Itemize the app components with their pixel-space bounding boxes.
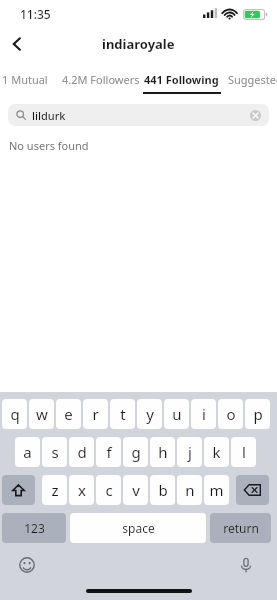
button[interactable]: u (164, 399, 189, 429)
staticText: m (209, 480, 224, 500)
button[interactable]: 4.2M Followers (62, 64, 140, 94)
button[interactable]: h (150, 437, 175, 467)
staticText: lildurk (32, 108, 66, 123)
button[interactable]: s (42, 437, 67, 467)
staticText: d (77, 442, 87, 462)
button[interactable]: k (204, 437, 229, 467)
staticText: n (185, 480, 195, 500)
button[interactable]: a (15, 437, 40, 467)
button[interactable]: g (123, 437, 148, 467)
button[interactable]: z (42, 475, 67, 505)
staticText: u (172, 404, 182, 424)
button[interactable]: 441 Following (140, 64, 222, 94)
button[interactable]: Dictation (233, 552, 259, 578)
staticText: l (242, 442, 246, 462)
staticText: space (122, 520, 155, 536)
button[interactable]: Clear search (246, 106, 264, 124)
staticText: v (132, 480, 140, 500)
staticText: 11:35 (20, 6, 51, 22)
staticText: Suggested (228, 72, 277, 87)
staticText: w (36, 404, 48, 424)
staticText: z (51, 480, 59, 500)
staticText: a (23, 442, 32, 462)
staticText: i (202, 404, 206, 424)
button[interactable]: Suggested (222, 64, 277, 94)
button[interactable]: space (70, 513, 206, 543)
staticText: t (120, 404, 126, 424)
button[interactable]: o (218, 399, 243, 429)
button[interactable]: p (245, 399, 270, 429)
button[interactable]: 123 (2, 513, 66, 543)
staticText: f (106, 442, 112, 462)
button[interactable]: l (231, 437, 256, 467)
button[interactable]: return (210, 513, 271, 543)
button[interactable]: e (56, 399, 81, 429)
button[interactable]: i (191, 399, 216, 429)
button[interactable]: d (69, 437, 94, 467)
staticText: return (223, 520, 259, 536)
button[interactable]: m (204, 475, 229, 505)
staticText: 1 Mutual (2, 72, 48, 87)
button[interactable]: v (123, 475, 148, 505)
button[interactable]: n (177, 475, 202, 505)
staticText: c (105, 480, 113, 500)
button[interactable]: f (96, 437, 121, 467)
staticText: s (51, 442, 59, 462)
staticText: p (253, 404, 263, 424)
button[interactable]: j (177, 437, 202, 467)
button[interactable]: c (96, 475, 121, 505)
staticText: q (10, 404, 20, 424)
button[interactable]: x (69, 475, 94, 505)
staticText: indiaroyale (102, 35, 175, 53)
button[interactable]: 1 Mutual (0, 64, 62, 94)
staticText: r (92, 404, 99, 424)
staticText: b (158, 480, 168, 500)
staticText: g (131, 442, 141, 462)
staticText: x (78, 480, 86, 500)
staticText: No users found (9, 138, 89, 153)
staticText: o (226, 404, 236, 424)
staticText: j (188, 442, 192, 462)
button[interactable]: Backspace (236, 475, 269, 505)
button[interactable]: b (150, 475, 175, 505)
staticText: 441 Following (144, 72, 219, 87)
button[interactable]: y (137, 399, 162, 429)
staticText: y (146, 404, 154, 424)
button[interactable]: Back (0, 28, 34, 60)
button[interactable]: Shift (2, 475, 35, 505)
staticText: 4.2M Followers (62, 72, 140, 87)
button[interactable]: lildurk (8, 104, 269, 126)
staticText: h (158, 442, 168, 462)
staticText: 123 (24, 520, 45, 536)
button[interactable]: r (83, 399, 108, 429)
button[interactable]: q (2, 399, 27, 429)
button[interactable]: w (29, 399, 54, 429)
button[interactable]: Emoji (14, 552, 40, 578)
staticText: k (212, 442, 221, 462)
staticText: e (64, 404, 73, 424)
button[interactable]: t (110, 399, 135, 429)
